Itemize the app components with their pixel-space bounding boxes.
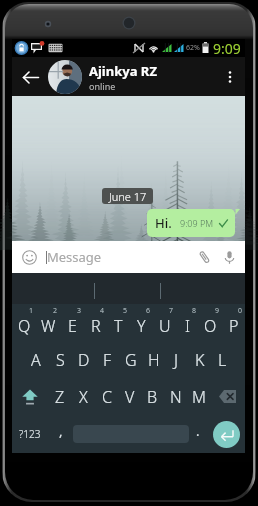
button[interactable]: G [119, 341, 142, 378]
button[interactable]: Hi. [147, 209, 235, 237]
button[interactable]: H [142, 341, 165, 378]
staticText: 7 [169, 306, 174, 316]
button[interactable]: X [72, 378, 95, 415]
button[interactable]: L [211, 341, 234, 378]
staticText: T [114, 315, 123, 337]
staticText: 8 [192, 306, 197, 316]
staticText: Z [55, 386, 65, 408]
staticText: L [218, 349, 227, 371]
staticText: 5 [123, 306, 128, 316]
staticText: N [170, 386, 182, 408]
staticText: I [185, 315, 190, 337]
button[interactable]: K [188, 341, 211, 378]
button[interactable]: F [96, 341, 119, 378]
staticText: F [103, 349, 112, 371]
button[interactable]: 8 [176, 304, 199, 341]
button[interactable]: Shift [12, 378, 48, 415]
staticText: D [78, 349, 90, 371]
staticText: June 17 [109, 189, 147, 204]
staticText: 0 [238, 306, 243, 316]
staticText: U [159, 315, 171, 337]
staticText: C [102, 386, 112, 408]
button[interactable]: 3 [60, 304, 84, 341]
button[interactable]: 6 [130, 304, 153, 341]
button[interactable]: J [165, 341, 188, 378]
staticText: 9:09 PM [180, 217, 214, 229]
staticText: R [91, 315, 101, 337]
button[interactable]: Voice message [219, 247, 239, 267]
staticText: online [89, 80, 116, 92]
staticText: W [41, 315, 56, 337]
button[interactable]: Emoji [19, 247, 39, 267]
staticText: G [125, 349, 137, 371]
staticText: 9 [215, 306, 220, 316]
button[interactable]: A [24, 341, 48, 378]
button[interactable]: Enter [213, 421, 240, 448]
button[interactable]: 9 [199, 304, 222, 341]
staticText: M [192, 386, 206, 408]
staticText: V [125, 386, 135, 408]
staticText: Ajinkya RZ [89, 62, 157, 80]
staticText: S [56, 349, 65, 371]
staticText: 4 [100, 306, 105, 316]
staticText: Hi. [155, 214, 172, 232]
staticText: A [31, 349, 41, 371]
staticText: 2 [53, 306, 58, 316]
button[interactable]: More options [219, 66, 241, 88]
staticText: ?123 [19, 427, 41, 441]
button[interactable]: , [48, 415, 73, 453]
staticText: 1 [29, 306, 34, 316]
button[interactable]: N [164, 378, 187, 415]
staticText: Message [47, 248, 102, 266]
staticText: H [148, 349, 160, 371]
button[interactable]: B [141, 378, 164, 415]
staticText: , [59, 422, 63, 440]
staticText: 62% [186, 43, 200, 53]
staticText: 3 [77, 306, 82, 316]
button[interactable]: Back [17, 64, 43, 90]
staticText: J [174, 349, 179, 371]
staticText: 9:09 [213, 39, 241, 57]
staticText: P [229, 315, 239, 337]
button[interactable]: 0 [222, 304, 245, 341]
button[interactable]: M [187, 378, 210, 415]
button[interactable]: 1 [12, 304, 36, 341]
staticText: Q [18, 315, 31, 337]
button[interactable]: 2 [36, 304, 60, 341]
staticText: B [147, 386, 158, 408]
button[interactable]: 7 [153, 304, 176, 341]
staticText: X [79, 386, 88, 408]
staticText: 6 [146, 306, 151, 316]
staticText: Y [137, 315, 146, 337]
button[interactable]: 5 [107, 304, 130, 341]
button[interactable]: S [48, 341, 72, 378]
button[interactable]: Z [48, 378, 72, 415]
staticText: E [68, 315, 77, 337]
staticText: . [196, 422, 200, 440]
button[interactable]: Attach [194, 247, 214, 267]
staticText: O [204, 315, 217, 337]
button[interactable]: ?123 [12, 415, 48, 453]
button[interactable]: 4 [84, 304, 107, 341]
staticText: K [195, 349, 205, 371]
button[interactable]: . [189, 415, 207, 453]
button[interactable]: Backspace [210, 378, 245, 415]
button[interactable]: D [72, 341, 96, 378]
button[interactable]: V [118, 378, 141, 415]
button[interactable]: Contact photo [48, 60, 82, 94]
button[interactable]: C [95, 378, 118, 415]
